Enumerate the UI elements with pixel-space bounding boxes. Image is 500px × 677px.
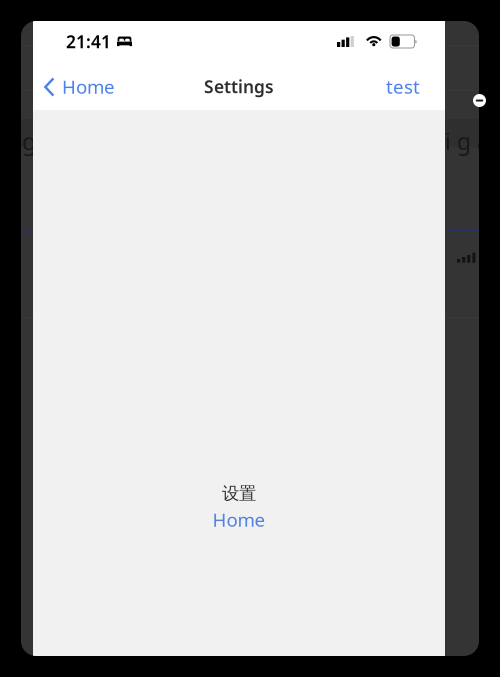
staticText: Settings [204,75,274,98]
button[interactable]: Home [212,507,265,532]
staticText: Home [212,507,265,532]
staticText: 21:41 [66,30,111,53]
staticText: test [386,74,420,99]
button[interactable]: test [386,68,420,105]
staticText: g [22,125,37,157]
staticText: Home [62,74,115,99]
button[interactable]: Home [44,68,115,105]
staticText: i g a t i o n [445,126,500,156]
staticText: 设置 [222,483,256,504]
